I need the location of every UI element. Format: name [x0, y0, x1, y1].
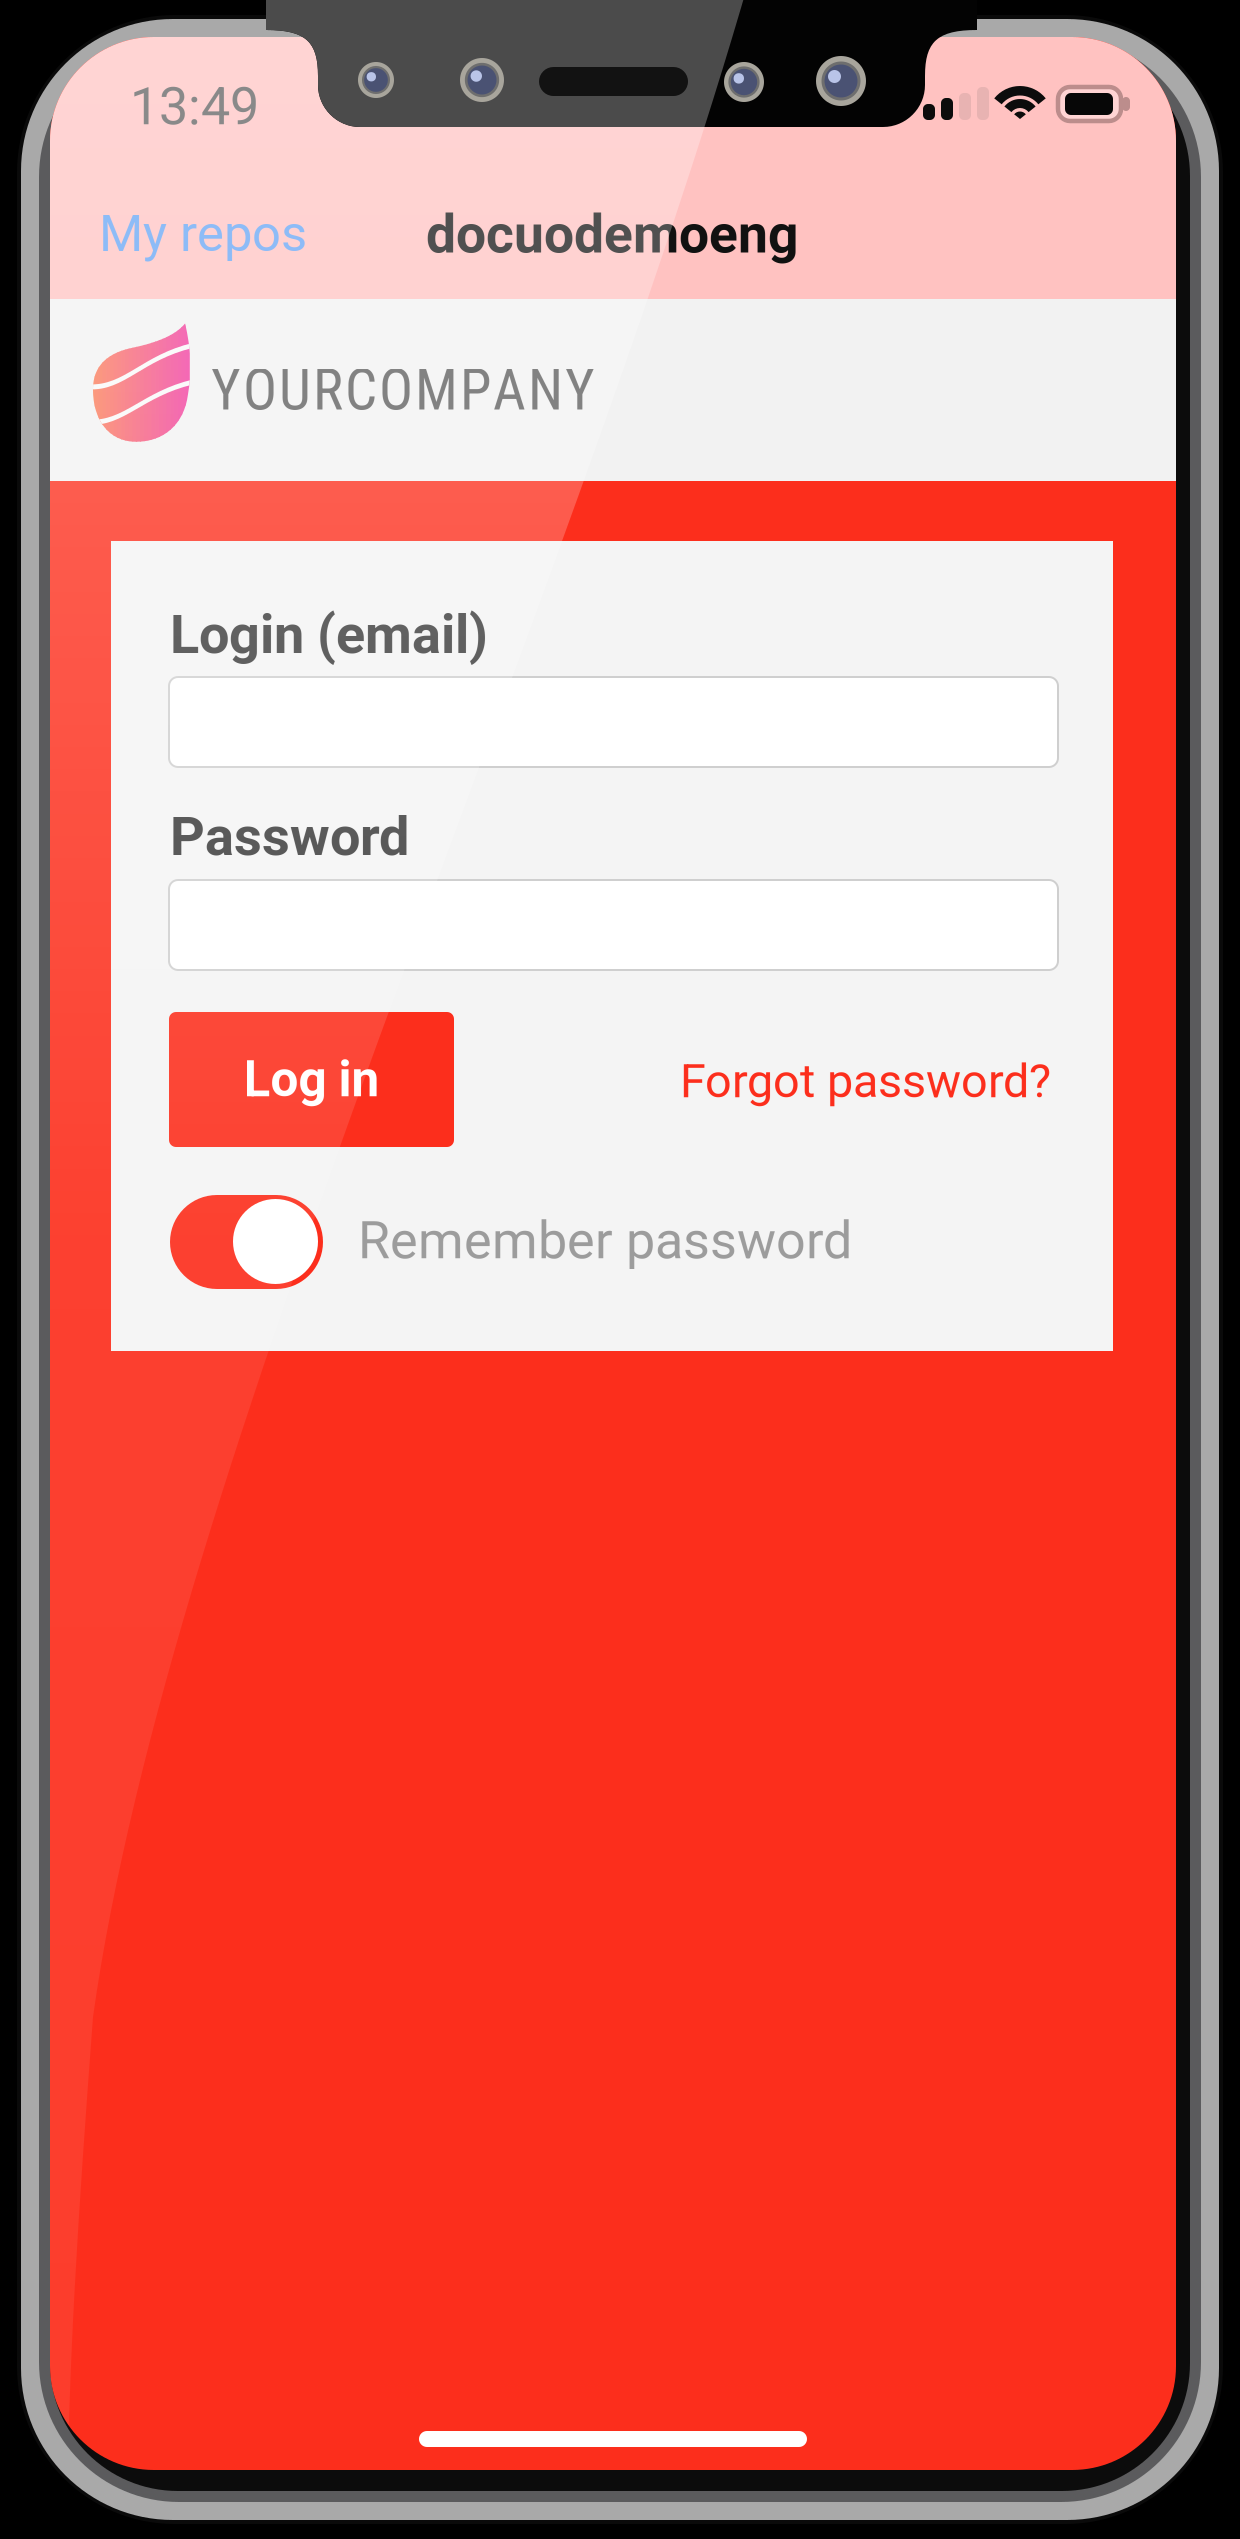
staticText: A: [493, 357, 526, 423]
staticText: N: [528, 357, 563, 423]
staticText: Y: [565, 357, 595, 423]
staticText: 13:49: [130, 76, 259, 137]
staticText: Remember password: [358, 1210, 852, 1271]
staticText: Forgot password?: [680, 1054, 1051, 1109]
staticText: O: [379, 357, 413, 423]
button[interactable]: Forgot password?: [680, 1054, 1051, 1109]
staticText: docuodemoeng: [426, 203, 798, 265]
staticText: My repos: [99, 204, 307, 263]
button[interactable]: My repos: [99, 204, 307, 263]
staticText: M: [415, 357, 458, 423]
staticText: P: [460, 357, 491, 423]
staticText: Log in: [243, 1051, 379, 1108]
staticText: O: [243, 357, 277, 423]
staticText: Password: [170, 805, 409, 868]
staticText: U: [279, 357, 311, 423]
staticText: R: [313, 357, 343, 423]
button[interactable]: Log in: [169, 1012, 454, 1147]
staticText: Login (email): [170, 603, 488, 666]
button[interactable]: Remember password: [170, 1195, 323, 1289]
staticText: Y: [211, 357, 241, 423]
staticText: C: [345, 357, 377, 423]
